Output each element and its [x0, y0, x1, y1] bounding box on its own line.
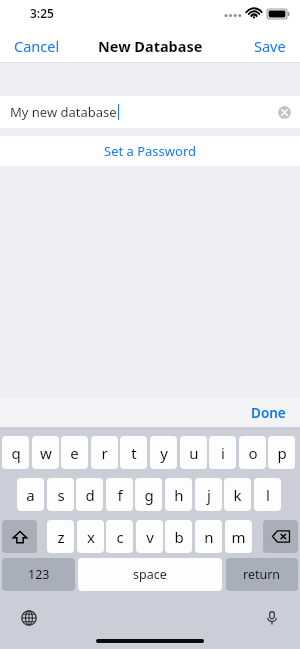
- button[interactable]: My new database: [0, 96, 300, 128]
- button[interactable]: o: [239, 436, 266, 469]
- button[interactable]: l: [254, 478, 281, 511]
- button[interactable]: d: [76, 478, 103, 511]
- staticText: k: [233, 485, 242, 505]
- staticText: My new database: [10, 103, 117, 121]
- staticText: New Database: [98, 36, 203, 56]
- staticText: j: [207, 485, 211, 505]
- button[interactable]: w: [32, 436, 59, 469]
- staticText: o: [248, 443, 258, 463]
- staticText: space: [133, 566, 167, 583]
- button[interactable]: z: [47, 520, 74, 553]
- button[interactable]: Save: [240, 30, 300, 62]
- button[interactable]: Set a Password: [0, 136, 300, 166]
- staticText: m: [231, 527, 246, 547]
- staticText: 3:25: [30, 5, 54, 21]
- button[interactable]: r: [91, 436, 118, 469]
- button[interactable]: f: [106, 478, 133, 511]
- button[interactable]: t: [120, 436, 147, 469]
- button[interactable]: k: [224, 478, 251, 511]
- staticText: l: [266, 485, 270, 505]
- staticText: g: [144, 485, 154, 505]
- button[interactable]: s: [47, 478, 74, 511]
- button[interactable]: Shift: [2, 520, 37, 553]
- staticText: a: [26, 485, 35, 505]
- button[interactable]: space: [78, 558, 222, 591]
- button[interactable]: e: [61, 436, 88, 469]
- staticText: Done: [251, 404, 286, 422]
- button[interactable]: Change keyboard: [19, 608, 39, 628]
- staticText: d: [85, 485, 95, 505]
- staticText: 123: [28, 566, 50, 583]
- staticText: Save: [254, 36, 286, 56]
- button[interactable]: u: [180, 436, 207, 469]
- button[interactable]: h: [165, 478, 192, 511]
- staticText: w: [40, 443, 52, 463]
- button[interactable]: Delete: [263, 520, 298, 553]
- button[interactable]: m: [225, 520, 252, 553]
- staticText: n: [204, 527, 214, 547]
- button[interactable]: Clear text: [278, 106, 291, 119]
- staticText: r: [101, 443, 108, 463]
- button[interactable]: return: [226, 558, 298, 591]
- staticText: p: [277, 443, 287, 463]
- button[interactable]: g: [135, 478, 162, 511]
- staticText: v: [146, 527, 154, 547]
- button[interactable]: Dictation: [262, 608, 282, 628]
- button[interactable]: x: [77, 520, 104, 553]
- staticText: Set a Password: [104, 142, 197, 160]
- staticText: u: [189, 443, 199, 463]
- button[interactable]: v: [136, 520, 163, 553]
- button[interactable]: Done: [237, 399, 300, 427]
- button[interactable]: y: [150, 436, 177, 469]
- button[interactable]: i: [209, 436, 236, 469]
- button[interactable]: j: [195, 478, 222, 511]
- button[interactable]: p: [268, 436, 295, 469]
- button[interactable]: n: [195, 520, 222, 553]
- button[interactable]: Cancel: [0, 30, 74, 62]
- staticText: s: [57, 485, 65, 505]
- button[interactable]: b: [165, 520, 192, 553]
- button[interactable]: a: [17, 478, 44, 511]
- staticText: t: [131, 443, 137, 463]
- staticText: q: [11, 443, 21, 463]
- staticText: b: [174, 527, 184, 547]
- button[interactable]: q: [2, 436, 29, 469]
- button[interactable]: c: [106, 520, 133, 553]
- staticText: e: [70, 443, 79, 463]
- staticText: return: [243, 566, 281, 583]
- button[interactable]: 123: [2, 558, 75, 591]
- staticText: h: [174, 485, 184, 505]
- staticText: z: [57, 527, 65, 547]
- staticText: Cancel: [14, 36, 60, 56]
- staticText: c: [116, 527, 124, 547]
- staticText: f: [117, 485, 123, 505]
- staticText: i: [221, 443, 225, 463]
- staticText: y: [160, 443, 168, 463]
- staticText: x: [87, 527, 95, 547]
